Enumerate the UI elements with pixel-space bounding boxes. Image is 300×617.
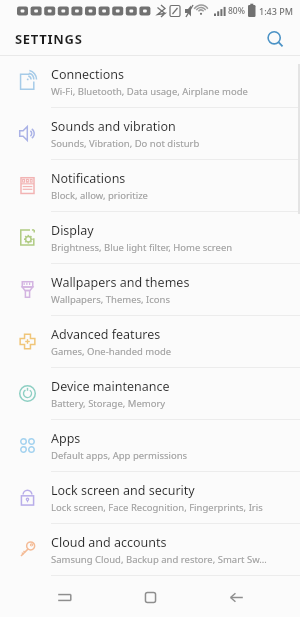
staticText: Lock screen, Face Recognition, Fingerpri…: [51, 501, 263, 514]
staticText: Notifications: [51, 170, 126, 187]
staticText: Connections: [51, 66, 124, 83]
staticText: Samsung Cloud, Backup and restore, Smart…: [51, 553, 267, 566]
button[interactable]: Back: [214, 577, 258, 617]
staticText: SETTINGS: [15, 30, 83, 48]
staticText: Default apps, App permissions: [51, 449, 188, 462]
staticText: Advanced features: [51, 326, 161, 343]
staticText: Wallpapers, Themes, Icons: [51, 293, 171, 306]
button[interactable]: Connections: [0, 56, 300, 108]
staticText: Display: [51, 222, 94, 239]
staticText: Wi-Fi, Bluetooth, Data usage, Airplane m…: [51, 85, 248, 98]
staticText: Device maintenance: [51, 378, 170, 395]
button[interactable]: Search: [258, 22, 292, 56]
staticText: Block, allow, prioritize: [51, 189, 148, 202]
staticText: Lock screen and security: [51, 482, 195, 499]
button[interactable]: Sounds and vibration: [0, 108, 300, 160]
staticText: Games, One-handed mode: [51, 345, 172, 358]
staticText: Battery, Storage, Memory: [51, 397, 166, 410]
button[interactable]: Recent apps: [42, 577, 86, 617]
button[interactable]: Notifications: [0, 160, 300, 212]
button[interactable]: Device maintenance: [0, 368, 300, 420]
button[interactable]: Display: [0, 212, 300, 264]
staticText: 1:43 PM: [259, 5, 293, 17]
button[interactable]: Home: [128, 577, 172, 617]
staticText: Sounds, Vibration, Do not disturb: [51, 137, 200, 150]
button[interactable]: Cloud and accounts: [0, 524, 300, 576]
button[interactable]: Lock screen and security: [0, 472, 300, 524]
staticText: Sounds and vibration: [51, 118, 176, 135]
button[interactable]: Wallpapers and themes: [0, 264, 300, 316]
staticText: Brightness, Blue light filter, Home scre…: [51, 241, 233, 254]
staticText: 80%: [228, 5, 245, 17]
button[interactable]: Apps: [0, 420, 300, 472]
button[interactable]: Advanced features: [0, 316, 300, 368]
staticText: Apps: [51, 430, 81, 447]
staticText: Wallpapers and themes: [51, 274, 190, 291]
staticText: Cloud and accounts: [51, 534, 167, 551]
